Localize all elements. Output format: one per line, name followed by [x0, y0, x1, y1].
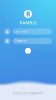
button[interactable]: Sign in	[25, 48, 31, 54]
staticText: Forgot your password?	[13, 91, 43, 95]
button[interactable]: Forgot your password?	[13, 91, 43, 95]
staticText: Username	[15, 30, 28, 33]
staticText: RAMBLE	[19, 20, 36, 25]
staticText: Password	[15, 39, 27, 43]
staticText: R	[26, 10, 30, 18]
